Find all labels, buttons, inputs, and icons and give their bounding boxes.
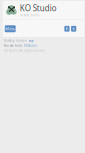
button[interactable]: Twitter [71,26,76,32]
staticText: f [66,26,68,31]
staticText: You are here: [4,44,23,47]
staticText: KO Studio [20,3,57,13]
staticText: KO Studio All rights reserved [4,49,45,52]
staticText: Menu [5,26,15,31]
button[interactable]: Top [28,39,33,42]
button[interactable]: Facebook [64,26,69,32]
button[interactable]: Menu [5,25,16,32]
staticText: Top [28,39,33,42]
staticText: t [73,26,75,31]
staticText: KOStudio [24,44,37,47]
staticText: creative studio [20,13,40,17]
staticText: Desktop Version [4,39,27,42]
